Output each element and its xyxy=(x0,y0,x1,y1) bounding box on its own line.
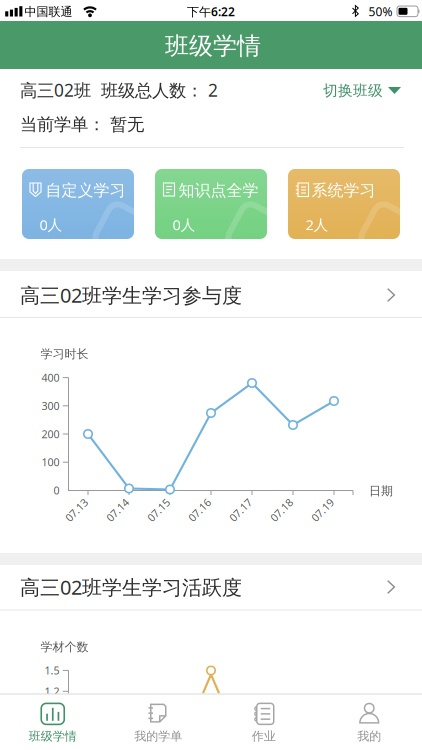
staticText: 知识点全学 xyxy=(178,181,258,200)
button[interactable]: 班级学情 xyxy=(0,698,105,748)
staticText: 07.16 xyxy=(186,503,213,517)
staticText: 高三02班 班级总人数： 2 xyxy=(20,78,218,101)
staticText: 高三02班学生学习参与度 xyxy=(20,282,242,308)
staticText: 300 xyxy=(41,399,59,413)
staticText: 100 xyxy=(41,455,59,469)
button[interactable]: 我的 xyxy=(317,698,422,748)
staticText: 中国联通 xyxy=(24,4,72,19)
staticText: 学习时长 xyxy=(40,347,88,361)
staticText: 自定义学习 xyxy=(45,181,125,200)
staticText: 当前学单： 暂无 xyxy=(20,114,144,135)
staticText: 07.17 xyxy=(227,503,254,517)
staticText: 作业 xyxy=(252,729,276,744)
staticText: 07.19 xyxy=(309,503,336,517)
staticText: 0人 xyxy=(172,215,195,234)
staticText: 高三02班学生学习活跃度 xyxy=(20,574,242,600)
staticText: 系统学习 xyxy=(311,181,375,200)
staticText: 班级学情 xyxy=(29,729,77,744)
staticText: 07.18 xyxy=(268,503,295,517)
staticText: 我的 xyxy=(357,729,381,744)
staticText: 日期 xyxy=(369,484,393,498)
staticText: 0人 xyxy=(39,215,62,234)
staticText: 1.5 xyxy=(44,663,59,677)
staticText: 07.15 xyxy=(145,503,172,517)
staticText: 400 xyxy=(41,370,59,385)
button[interactable]: 切换班级 xyxy=(323,77,401,103)
staticText: 07.13 xyxy=(63,503,90,517)
button[interactable]: 知识点全学 xyxy=(155,169,267,239)
button[interactable]: 高三02班学生学习参与度 xyxy=(0,272,422,318)
staticText: 1.2 xyxy=(44,684,59,698)
staticText: 班级学情 xyxy=(165,31,261,61)
staticText: 我的学单 xyxy=(134,729,182,744)
staticText: 2人 xyxy=(305,215,328,234)
staticText: 200 xyxy=(41,427,59,441)
staticText: 07.14 xyxy=(104,503,131,517)
button[interactable]: 自定义学习 xyxy=(22,169,134,239)
staticText: 切换班级 xyxy=(323,81,383,99)
button[interactable]: 我的学单 xyxy=(106,698,211,748)
button[interactable]: 作业 xyxy=(211,698,316,748)
staticText: 学材个数 xyxy=(40,640,88,654)
staticText: 下午6:22 xyxy=(187,3,235,19)
button[interactable]: 系统学习 xyxy=(288,169,400,239)
button[interactable]: 高三02班学生学习活跃度 xyxy=(0,564,422,610)
staticText: 0 xyxy=(53,483,59,497)
staticText: 50% xyxy=(368,3,392,19)
